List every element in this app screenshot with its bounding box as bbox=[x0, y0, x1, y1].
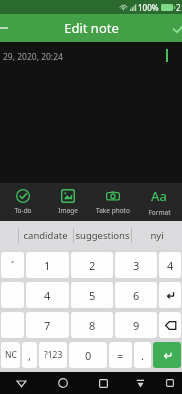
button[interactable]: Image bbox=[45, 183, 90, 221]
staticText: Format bbox=[148, 208, 171, 217]
staticText: Edit note bbox=[64, 19, 119, 37]
button[interactable]: Backspace bbox=[159, 312, 181, 338]
button[interactable]: 2 bbox=[71, 252, 113, 278]
button[interactable]: 9 bbox=[115, 312, 157, 338]
button[interactable]: . bbox=[134, 342, 151, 368]
button[interactable]: 8 bbox=[71, 312, 113, 338]
button[interactable] bbox=[1, 312, 24, 338]
button[interactable]: Take photo bbox=[90, 183, 136, 221]
button[interactable]: ?123 bbox=[39, 342, 67, 368]
button[interactable]: NC bbox=[1, 342, 20, 368]
staticText: Take photo bbox=[96, 206, 130, 215]
staticText: Image bbox=[58, 206, 78, 215]
staticText: 4 bbox=[44, 288, 51, 303]
staticText: ?123 bbox=[44, 349, 63, 361]
staticText: 6 bbox=[133, 288, 140, 303]
staticText: 5 bbox=[89, 288, 96, 303]
staticText: 8 bbox=[89, 318, 96, 333]
staticText: 2 bbox=[176, 2, 181, 13]
button[interactable]: candidate bbox=[18, 221, 73, 250]
button[interactable]: 4 bbox=[159, 252, 181, 278]
staticText: nyi bbox=[150, 229, 164, 242]
button[interactable]: 4 bbox=[26, 282, 69, 308]
staticText: 2 bbox=[89, 258, 96, 273]
staticText: 7 bbox=[44, 318, 51, 333]
button[interactable]: Return bbox=[159, 282, 181, 308]
staticText: 1 bbox=[44, 258, 51, 273]
button[interactable]: Back bbox=[0, 372, 42, 394]
staticText: suggestions bbox=[75, 229, 130, 242]
button[interactable]: nyi bbox=[131, 221, 182, 250]
button[interactable]: , bbox=[22, 342, 37, 368]
button[interactable]: 5 bbox=[71, 282, 113, 308]
button[interactable]: 7 bbox=[26, 312, 69, 338]
staticText: ´ bbox=[11, 258, 15, 273]
staticText: 29, 2020, 20:24 bbox=[3, 51, 63, 63]
staticText: To-do bbox=[14, 206, 32, 215]
button[interactable]: suggestions bbox=[73, 221, 131, 250]
button[interactable]: 1 bbox=[26, 252, 69, 278]
staticText: . bbox=[141, 348, 144, 363]
button[interactable]: Save note bbox=[165, 15, 182, 41]
button[interactable]: To-do bbox=[0, 183, 45, 221]
staticText: NC bbox=[5, 349, 17, 361]
button[interactable]: Navigate up bbox=[0, 15, 14, 41]
staticText: 3 bbox=[133, 258, 140, 273]
button[interactable]: = bbox=[109, 342, 132, 368]
staticText: , bbox=[28, 348, 31, 363]
staticText: 4 bbox=[167, 258, 174, 273]
button[interactable]: Recents bbox=[83, 372, 124, 394]
staticText: Aa bbox=[151, 187, 167, 205]
button[interactable]: Enter bbox=[153, 342, 181, 368]
staticText: 100% bbox=[138, 2, 159, 13]
button[interactable]: Home bbox=[42, 372, 83, 394]
button[interactable]: 6 bbox=[115, 282, 157, 308]
button[interactable]: ´ bbox=[1, 252, 24, 278]
staticText: candidate bbox=[23, 229, 68, 242]
button[interactable]: Switch input method bbox=[157, 372, 182, 394]
staticText: = bbox=[117, 348, 124, 363]
staticText: 0 bbox=[85, 348, 92, 363]
button[interactable]: 3 bbox=[115, 252, 157, 278]
button[interactable] bbox=[1, 282, 24, 308]
staticText: 9 bbox=[133, 318, 140, 333]
button[interactable]: Hide keyboard bbox=[124, 372, 157, 394]
button[interactable]: Aa bbox=[136, 183, 182, 221]
button[interactable]: 0 bbox=[69, 342, 107, 368]
